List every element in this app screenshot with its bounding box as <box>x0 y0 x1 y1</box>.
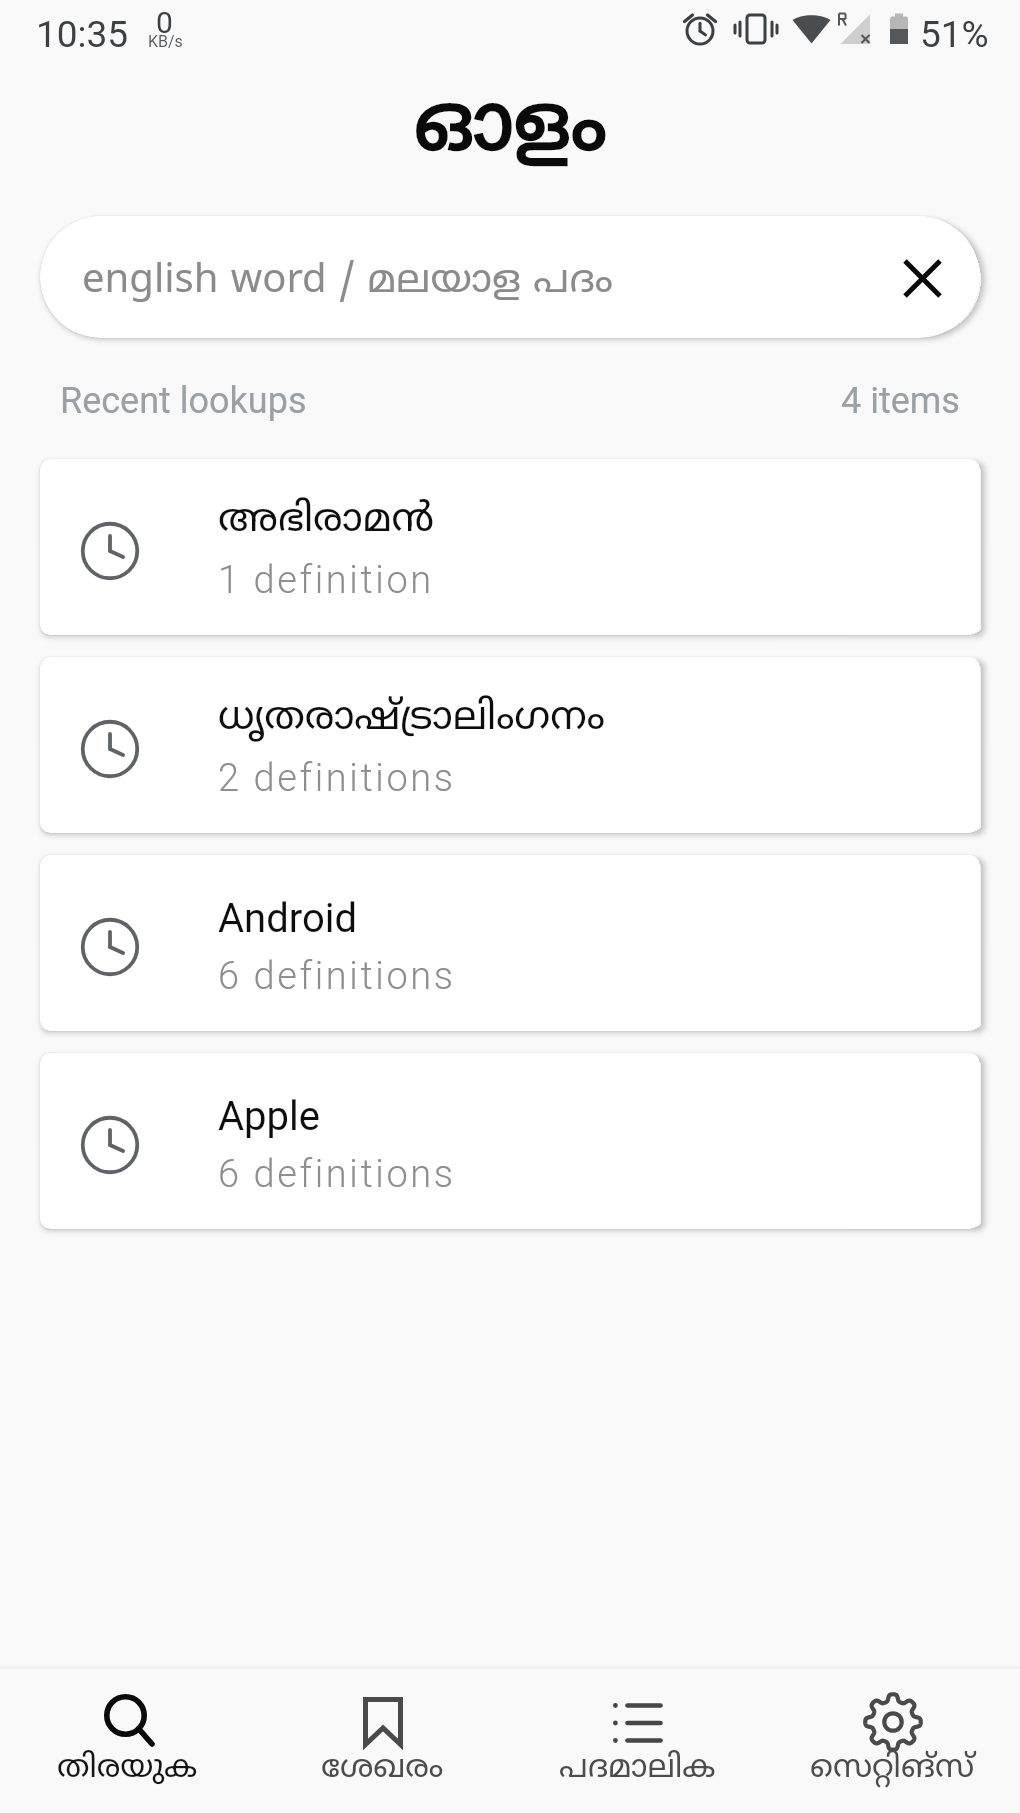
staticText: തിരയുക <box>57 1749 198 1789</box>
button[interactable]: ധൃതരാഷ്ട്രാലിംഗനം <box>40 657 980 833</box>
staticText: Recent lookups <box>60 380 307 422</box>
button[interactable]: Settings <box>765 1669 1020 1813</box>
staticText: 1 definition <box>218 558 434 603</box>
staticText: ധൃതരാഷ്ട്രാലിംഗനം <box>218 694 605 744</box>
staticText: KB/s <box>148 32 183 51</box>
button[interactable]: Android <box>40 855 980 1031</box>
staticText: 51% <box>920 13 989 56</box>
staticText: Apple <box>218 1093 320 1140</box>
staticText: അഭിരാമൻ <box>218 496 435 546</box>
button[interactable]: Apple <box>40 1053 980 1229</box>
staticText: പദമാലിക <box>559 1749 716 1789</box>
button[interactable]: അഭിരാമൻ <box>40 459 980 635</box>
staticText: 0 <box>156 5 173 40</box>
button[interactable]: english word / മലയാള പദം <box>40 216 980 338</box>
staticText: Android <box>218 895 358 942</box>
staticText: സെറ്റിങ്സ് <box>810 1749 975 1789</box>
staticText: 10:35 <box>36 13 129 56</box>
staticText: 6 definitions <box>218 954 456 999</box>
staticText: ശേഖരം <box>321 1749 444 1789</box>
staticText: 2 definitions <box>218 756 456 801</box>
staticText: 4 items <box>841 380 960 422</box>
staticText: ഓളം <box>414 81 607 171</box>
button[interactable]: Clear search <box>893 241 951 313</box>
button[interactable]: Saved <box>255 1669 510 1813</box>
staticText: english word / മലയാള പദം <box>82 257 613 307</box>
staticText: 6 definitions <box>218 1152 456 1197</box>
button[interactable]: Search <box>0 1669 255 1813</box>
button[interactable]: Word list <box>510 1669 765 1813</box>
